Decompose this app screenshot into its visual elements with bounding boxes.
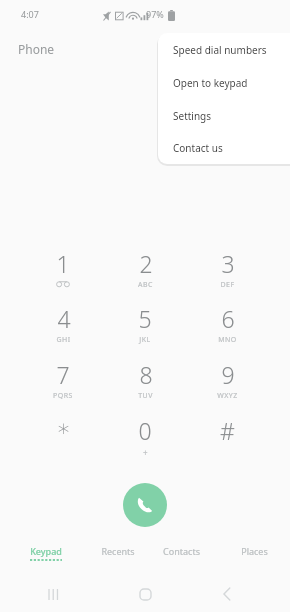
button[interactable]: Keypad (12, 545, 80, 571)
button[interactable]: 7 (31, 359, 95, 409)
staticText: PQRS (53, 391, 73, 401)
button[interactable]: 6 (195, 303, 259, 353)
staticText: WXYZ (217, 391, 238, 401)
staticText: 7 (56, 359, 70, 390)
button[interactable]: Contacts (147, 545, 215, 571)
staticText: # (220, 415, 235, 446)
button[interactable]: Call (123, 483, 167, 527)
staticText: Contact us (173, 141, 223, 155)
button[interactable]: 2 (113, 248, 177, 298)
button[interactable]: Places (220, 545, 288, 571)
button[interactable]: 4 (31, 303, 95, 353)
staticText: Settings (173, 109, 212, 123)
button[interactable]: 8 (113, 359, 177, 409)
staticText: JKL (139, 335, 151, 345)
staticText: ∗ (56, 415, 71, 442)
staticText: 6 (221, 303, 235, 334)
staticText: Speed dial numbers (173, 43, 267, 57)
staticText: MNO (218, 335, 237, 345)
staticText: 4 (57, 303, 71, 334)
staticText: 3 (221, 248, 235, 279)
button[interactable]: 1 (31, 248, 95, 298)
staticText: 2 (139, 248, 153, 279)
staticText: + (143, 447, 148, 458)
staticText: 0 (138, 415, 152, 446)
button[interactable]: 9 (195, 359, 259, 409)
staticText: Places (241, 545, 268, 557)
button[interactable]: # (195, 415, 259, 465)
staticText: Recents (101, 545, 135, 557)
staticText: ABC (138, 280, 153, 290)
staticText: 97% (146, 8, 164, 20)
button[interactable]: Contact us (158, 132, 290, 164)
staticText: TUV (138, 391, 153, 401)
staticText: Contacts (163, 545, 200, 557)
button[interactable]: Recent apps (43, 584, 63, 604)
staticText: Keypad (30, 545, 62, 557)
staticText: 5 (138, 303, 152, 334)
button[interactable]: Open to keypad (158, 66, 290, 99)
staticText: 9 (221, 359, 235, 390)
button[interactable]: Back (217, 584, 237, 604)
button[interactable]: Recents (84, 545, 152, 571)
button[interactable]: Home (135, 584, 155, 604)
button[interactable]: 0 (113, 415, 177, 465)
button[interactable]: Speed dial numbers (158, 33, 290, 66)
button[interactable]: ∗ (31, 415, 95, 465)
staticText: 4:07 (21, 8, 39, 20)
button[interactable]: 5 (113, 303, 177, 353)
staticText: Phone (18, 41, 55, 57)
staticText: Open to keypad (173, 76, 248, 90)
staticText: GHI (56, 335, 71, 345)
staticText: 8 (139, 359, 153, 390)
button[interactable]: 3 (195, 248, 259, 298)
staticText: DEF (220, 280, 235, 290)
staticText: 1 (56, 248, 70, 279)
button[interactable]: Settings (158, 99, 290, 132)
